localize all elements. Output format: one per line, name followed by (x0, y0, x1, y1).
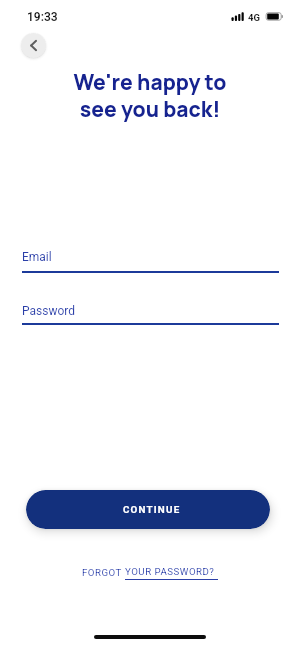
staticText: We're happy to see you back! (0, 68, 300, 123)
staticText: 4G (248, 12, 260, 23)
button[interactable]: CONTINUE (26, 490, 270, 529)
staticText: Email (22, 250, 52, 264)
staticText: YOUR PASSWORD? (125, 566, 215, 577)
staticText: 19:33 (27, 10, 58, 24)
staticText: FORGOT (82, 567, 125, 578)
staticText: CONTINUE (123, 504, 181, 515)
button[interactable]: Back (21, 33, 46, 58)
staticText: Password (22, 304, 76, 318)
button[interactable]: FORGOT (82, 566, 218, 578)
